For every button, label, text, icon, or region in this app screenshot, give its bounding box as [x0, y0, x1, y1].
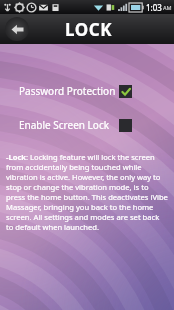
other: Password Protection [119, 85, 132, 98]
staticText: LOCK [65, 18, 113, 41]
staticText: 1:03 [146, 2, 162, 13]
button[interactable]: Enable Screen Lock [0, 116, 174, 134]
staticText: Enable Screen Lock [19, 118, 110, 132]
button[interactable]: Back [5, 17, 29, 41]
staticText: AM [163, 4, 172, 11]
button[interactable]: Password Protection [0, 82, 174, 100]
staticText: -Lock: Locking feature will lock the scr… [6, 152, 168, 232]
staticText: Password Protection [19, 84, 116, 98]
